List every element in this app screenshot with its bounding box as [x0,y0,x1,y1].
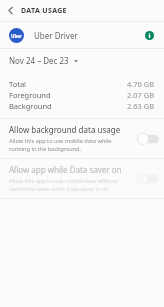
button[interactable]: Navigate up [4,4,17,17]
button[interactable]: Allow background data usage [137,132,159,146]
button[interactable]: Uber [0,22,164,48]
button[interactable]: Nov 24 – Dec 23 [9,55,79,66]
button[interactable]: Allow app while Data saver on [137,172,159,186]
staticText: Allow this app to use mobile data withou… [9,177,133,193]
button[interactable]: App info [141,27,157,43]
staticText: 2.63 GB [127,101,155,111]
staticText: Allow this app to use mobile data while … [9,137,133,153]
staticText: Nov 24 – Dec 23 [9,55,69,66]
staticText: Foreground [9,90,51,100]
staticText: 2.07 GB [127,90,155,100]
staticText: Background [9,101,52,111]
staticText: Allow app while Data saver on [9,164,122,175]
button[interactable]: Allow background data usage [0,119,164,158]
staticText: Total [9,79,27,89]
staticText: Uber Driver [34,30,78,41]
staticText: Allow background data usage [9,124,121,135]
staticText: Uber [11,33,22,39]
staticText: 4.70 GB [127,79,155,89]
button[interactable]: Allow app while Data saver on [0,159,164,198]
staticText: DATA USAGE [21,6,67,16]
